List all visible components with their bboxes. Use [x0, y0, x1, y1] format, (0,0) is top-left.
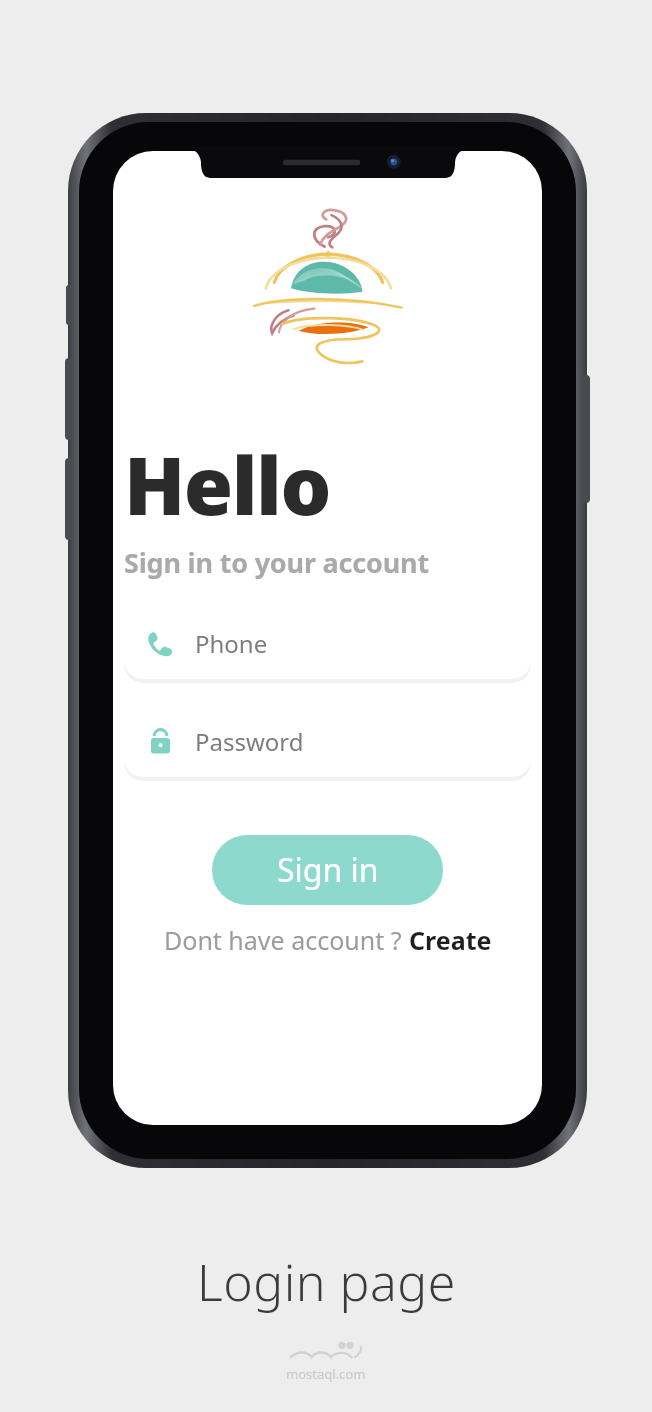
- staticText: Password: [195, 725, 304, 758]
- staticText: Dont have account ?: [164, 923, 409, 957]
- staticText: Login page: [197, 1248, 456, 1316]
- button[interactable]: Phone number field: [124, 608, 531, 679]
- staticText: Phone: [195, 627, 268, 660]
- button[interactable]: Dont have account ?: [158, 919, 498, 961]
- staticText: mostaql.com: [286, 1365, 366, 1383]
- staticText: Sign in: [277, 848, 379, 892]
- button[interactable]: Sign in: [212, 835, 443, 905]
- staticText: Hello: [124, 429, 330, 538]
- button[interactable]: Password field: [124, 706, 531, 777]
- staticText: Create: [409, 923, 492, 957]
- staticText: Sign in to your account: [124, 544, 429, 581]
